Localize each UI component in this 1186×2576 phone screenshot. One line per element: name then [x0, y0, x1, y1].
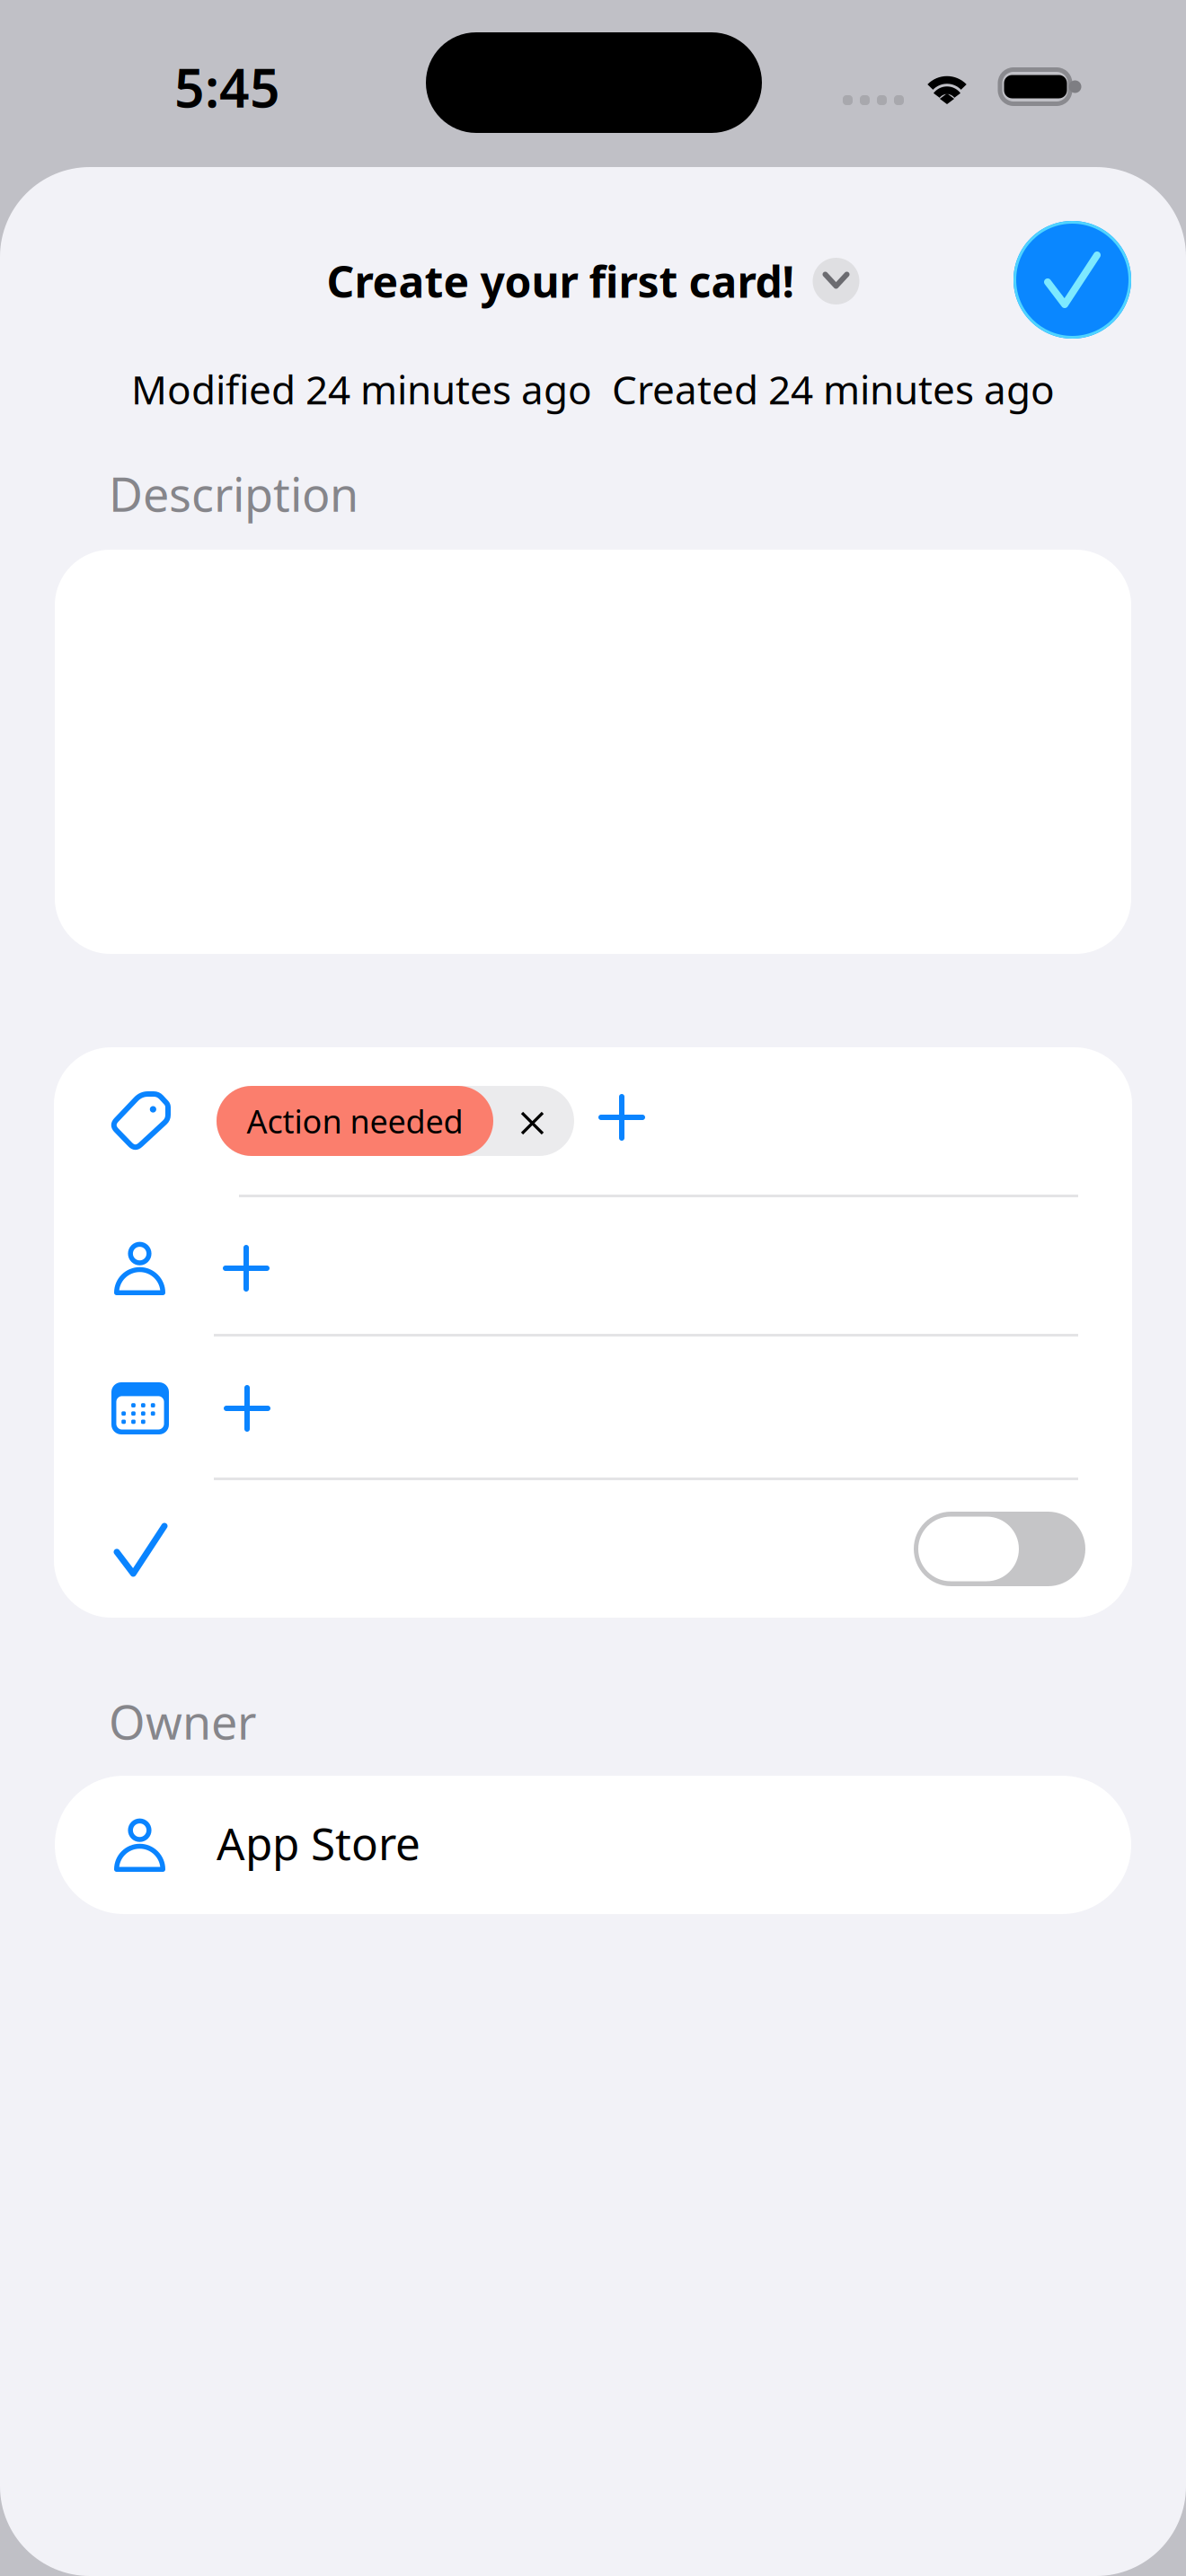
- button[interactable]: Mark as complete: [914, 1512, 1085, 1586]
- staticText: App Store: [217, 1813, 420, 1872]
- button[interactable]: Show card details: [813, 258, 859, 304]
- staticText: Owner: [109, 1690, 256, 1752]
- staticText: Create your first card!: [327, 252, 795, 310]
- staticText: 5:45: [174, 52, 280, 122]
- button[interactable]: App Store: [55, 1776, 1131, 1914]
- staticText: Modified 24 minutes ago Created 24 minut…: [131, 363, 1055, 415]
- staticText: Action needed: [247, 1099, 463, 1142]
- button[interactable]: Add due date: [210, 1372, 284, 1445]
- button[interactable]: Save card: [1013, 221, 1131, 339]
- staticText: Description: [109, 463, 358, 525]
- button[interactable]: Add assignee: [209, 1231, 283, 1305]
- button[interactable]: Add tag: [585, 1081, 659, 1154]
